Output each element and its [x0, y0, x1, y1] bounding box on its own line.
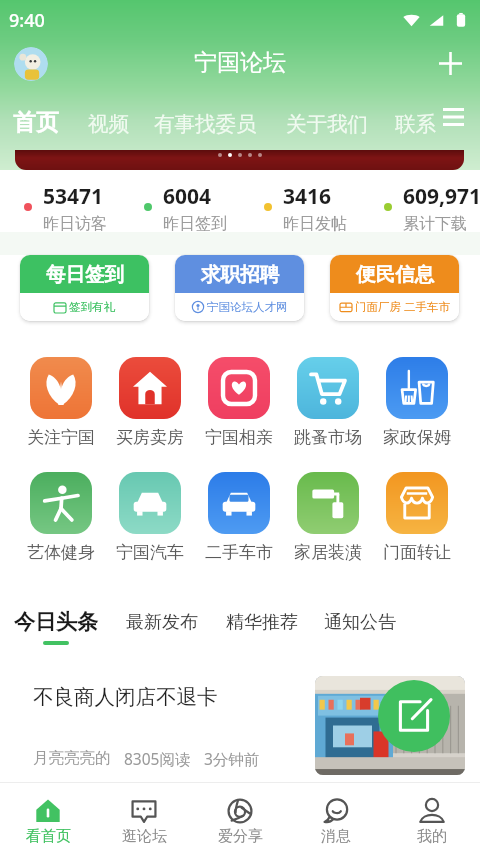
button[interactable]: New post	[378, 680, 450, 752]
staticText: 联系	[395, 111, 436, 137]
button[interactable]: Avatar	[14, 47, 48, 81]
button[interactable]: 关注宁国	[17, 357, 105, 448]
button[interactable]: Banner	[15, 150, 464, 170]
button[interactable]: 宁国相亲	[194, 357, 283, 448]
staticText: 逛论坛	[122, 827, 167, 846]
staticText: 宁国论坛	[194, 48, 286, 77]
staticText: 艺体健身	[27, 542, 95, 563]
staticText: 昨日签到	[163, 214, 227, 234]
button[interactable]: 视频	[88, 111, 129, 137]
button[interactable]: 看首页	[0, 783, 96, 852]
button[interactable]: 今日头条	[14, 609, 98, 635]
staticText: 二手车市	[205, 542, 273, 563]
staticText: 3416	[283, 182, 332, 211]
staticText: 9:40	[9, 8, 45, 33]
staticText: 最新发布	[126, 611, 198, 634]
button[interactable]: 买房卖房	[105, 357, 194, 448]
staticText: 便民信息	[356, 262, 434, 287]
button[interactable]: 有事找委员	[154, 111, 257, 137]
staticText: 家居装潢	[294, 542, 362, 563]
staticText: 消息	[321, 827, 351, 846]
staticText: 我的	[417, 827, 447, 846]
button[interactable]: 家政保姆	[372, 357, 461, 448]
button[interactable]: 6004	[120, 170, 240, 232]
staticText: 签到有礼	[69, 300, 115, 314]
staticText: 门面转让	[383, 542, 451, 563]
button[interactable]: 联系	[395, 111, 436, 137]
button[interactable]: 求职招聘	[175, 255, 304, 321]
staticText: 视频	[88, 111, 129, 137]
staticText: 精华推荐	[226, 611, 298, 634]
button[interactable]: Add	[431, 44, 469, 82]
button[interactable]: 关于我们	[286, 111, 368, 137]
button[interactable]: 609,971	[360, 170, 480, 232]
button[interactable]: 宁国汽车	[105, 472, 194, 563]
staticText: 爱分享	[218, 827, 263, 846]
staticText: 累计下载	[403, 214, 467, 234]
button[interactable]: 精华推荐	[226, 609, 298, 634]
staticText: 关注宁国	[27, 427, 95, 448]
staticText: 宁国汽车	[116, 542, 184, 563]
button[interactable]: 消息	[288, 783, 384, 852]
staticText: 609,971	[403, 182, 480, 211]
staticText: 8305阅读	[124, 748, 191, 769]
staticText: 求职招聘	[201, 262, 279, 287]
staticText: 昨日访客	[43, 214, 107, 234]
staticText: 宁国相亲	[205, 427, 273, 448]
staticText: 看首页	[26, 827, 71, 846]
button[interactable]: 每日签到	[20, 255, 149, 321]
staticText: 宁国论坛人才网	[207, 300, 288, 314]
staticText: 家政保姆	[383, 427, 451, 448]
staticText: 6004	[163, 182, 212, 211]
button[interactable]: 艺体健身	[17, 472, 105, 563]
staticText: 月亮亮亮的	[33, 748, 111, 768]
button[interactable]: 跳蚤市场	[283, 357, 372, 448]
button[interactable]: 53471	[0, 170, 120, 232]
staticText: 首页	[13, 108, 59, 137]
staticText: 跳蚤市场	[294, 427, 362, 448]
staticText: 53471	[43, 182, 104, 211]
staticText: 昨日发帖	[283, 214, 347, 234]
staticText: 通知公告	[324, 611, 396, 634]
button[interactable]: 便民信息	[330, 255, 459, 321]
staticText: 3分钟前	[204, 748, 260, 769]
button[interactable]: 首页	[13, 108, 59, 137]
button[interactable]: 门面转让	[372, 472, 461, 563]
button[interactable]: 我的	[384, 783, 480, 852]
button[interactable]: 逛论坛	[96, 783, 192, 852]
staticText: 不良商人闭店不退卡	[33, 684, 218, 710]
button[interactable]: 通知公告	[324, 609, 396, 634]
staticText: 买房卖房	[116, 427, 184, 448]
button[interactable]: 3416	[240, 170, 360, 232]
button[interactable]: 最新发布	[126, 609, 198, 634]
staticText: 今日头条	[14, 609, 98, 635]
button[interactable]: 爱分享	[192, 783, 288, 852]
staticText: 门面厂房 二手车市	[355, 299, 450, 315]
button[interactable]: 不良商人闭店不退卡	[0, 678, 480, 782]
staticText: 关于我们	[286, 111, 368, 137]
staticText: 有事找委员	[154, 111, 257, 137]
button[interactable]: Menu	[434, 98, 472, 136]
button[interactable]: 二手车市	[194, 472, 283, 563]
staticText: 每日签到	[46, 262, 124, 287]
button[interactable]: 家居装潢	[283, 472, 372, 563]
